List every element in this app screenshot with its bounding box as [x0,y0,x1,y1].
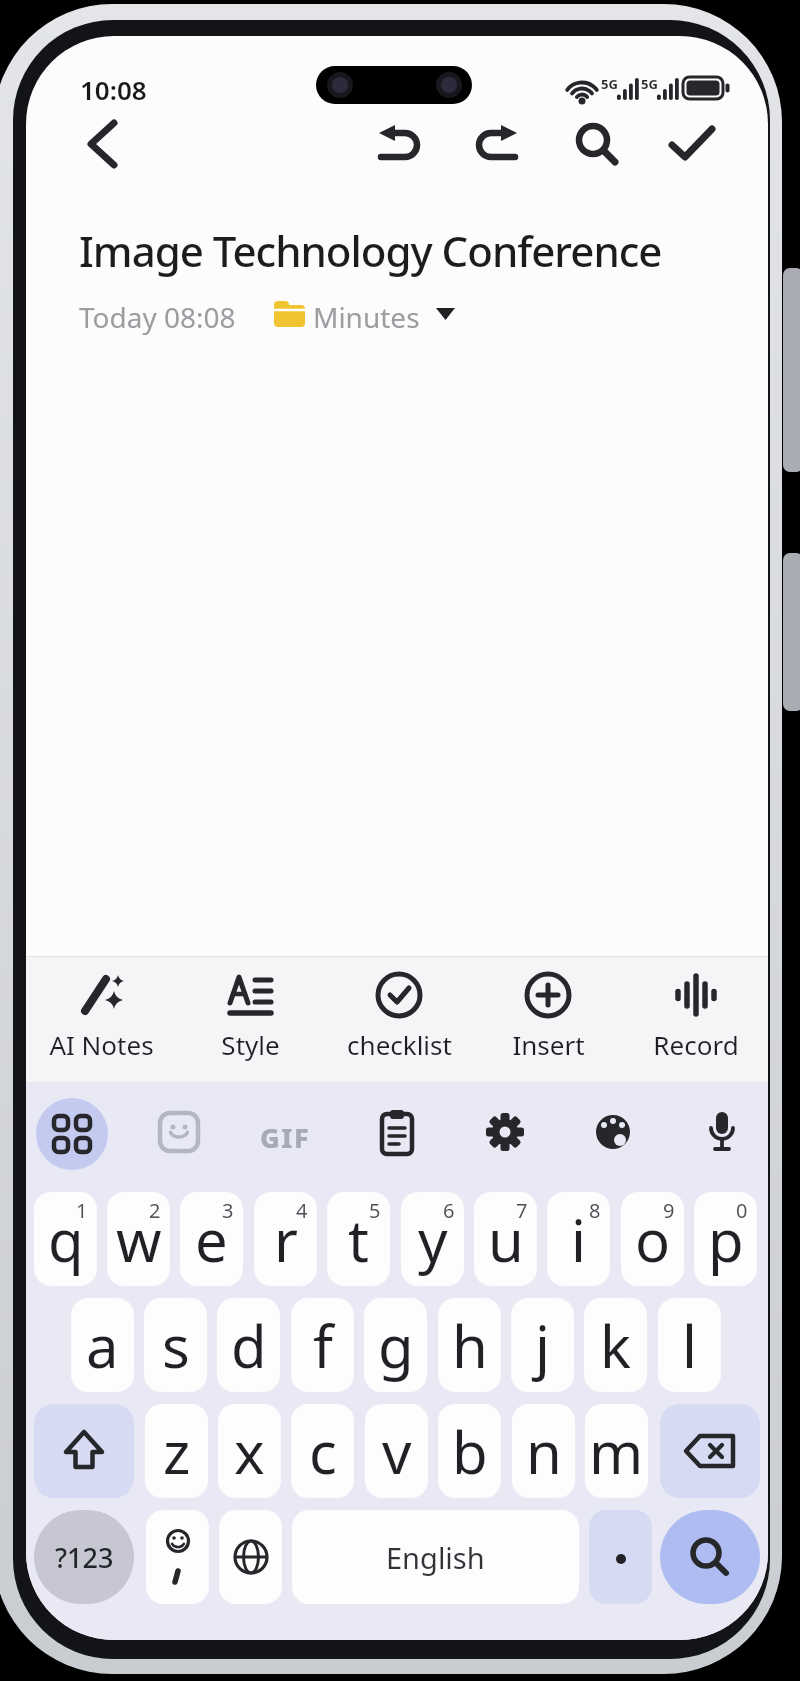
button[interactable]: Record [626,970,766,1074]
button[interactable]: u [474,1192,537,1286]
button[interactable]: AI Notes [31,970,171,1074]
button[interactable]: o [621,1192,684,1286]
button[interactable]: n [512,1404,575,1498]
staticText: 5G [601,75,618,93]
staticText: e [195,1200,228,1279]
button[interactable] [474,124,520,164]
staticText: z [163,1412,191,1491]
button[interactable] [483,1110,531,1158]
staticText: 0 [736,1197,748,1224]
button[interactable]: d [217,1298,280,1392]
staticText: g [378,1306,414,1385]
button[interactable]: Style [180,970,320,1074]
staticText: 2 [149,1197,161,1224]
staticText: 8 [589,1197,601,1224]
button[interactable] [376,124,422,164]
staticText: 1 [76,1197,88,1224]
staticText: v [382,1412,412,1491]
staticText: checklist [347,1027,452,1062]
button[interactable]: c [291,1404,354,1498]
button[interactable]: x [218,1404,281,1498]
button[interactable]: GIF [260,1119,311,1156]
staticText: c [309,1412,337,1491]
staticText: k [600,1306,631,1385]
staticText: Record [653,1027,739,1062]
button[interactable]: b [438,1404,501,1498]
button[interactable] [700,1110,748,1158]
button[interactable]: a [71,1298,134,1392]
staticText: p [708,1200,744,1279]
button[interactable] [668,125,716,163]
button[interactable]: ?123 [34,1510,134,1604]
staticText: m [589,1412,644,1491]
staticText: h [452,1306,488,1385]
staticText: 7 [516,1197,528,1224]
staticText: ?123 [55,1539,114,1576]
staticText: t [348,1200,369,1279]
staticText: 6 [443,1197,455,1224]
button[interactable]: checklist [329,970,469,1074]
button[interactable] [660,1404,760,1498]
staticText: Style [221,1027,280,1062]
button[interactable]: p [694,1192,757,1286]
button[interactable] [36,1098,108,1170]
staticText: x [234,1412,265,1491]
button[interactable]: k [584,1298,647,1392]
staticText: o [635,1200,671,1279]
button[interactable] [82,120,124,168]
button[interactable]: y [401,1192,464,1286]
staticText: a [86,1306,119,1385]
button[interactable]: r [254,1192,317,1286]
button[interactable] [589,1510,652,1604]
button[interactable]: s [144,1298,207,1392]
button[interactable] [375,1110,423,1158]
staticText: 10:08 [80,72,147,107]
button[interactable]: m [585,1404,648,1498]
button[interactable]: l [658,1298,721,1392]
button[interactable]: i [547,1192,610,1286]
button[interactable] [591,1110,639,1158]
button[interactable] [219,1510,282,1604]
button[interactable]: English [292,1510,579,1604]
staticText: u [488,1200,524,1279]
staticText: q [48,1200,84,1279]
staticText: Image Technology Conference [79,222,662,279]
button[interactable] [660,1510,760,1604]
button[interactable]: j [511,1298,574,1392]
button[interactable]: Minutes [313,298,420,336]
staticText: w [116,1200,162,1279]
staticText: i [571,1200,586,1279]
button[interactable] [34,1404,134,1498]
staticText: Minutes [313,298,420,336]
staticText: y [418,1200,448,1279]
staticText: d [231,1306,267,1385]
button[interactable]: z [145,1404,208,1498]
staticText: l [682,1306,697,1385]
button[interactable] [574,121,620,167]
staticText: 9 [663,1197,675,1224]
staticText: b [452,1412,488,1491]
staticText: 4 [296,1197,308,1224]
button[interactable]: g [364,1298,427,1392]
button[interactable]: q [34,1192,97,1286]
button[interactable]: t [327,1192,390,1286]
button[interactable]: h [438,1298,501,1392]
staticText: AI Notes [49,1027,154,1062]
button[interactable]: f [291,1298,354,1392]
staticText: 5 [369,1197,381,1224]
staticText: s [162,1306,190,1385]
button[interactable]: w [107,1192,170,1286]
staticText: n [526,1412,562,1491]
staticText: Insert [512,1027,585,1062]
button[interactable]: e [180,1192,243,1286]
staticText: r [274,1200,298,1279]
button[interactable]: Insert [478,970,618,1074]
button[interactable] [157,1110,205,1158]
staticText: English [386,1538,485,1577]
button[interactable] [146,1510,209,1604]
button[interactable]: v [365,1404,428,1498]
staticText: f [313,1306,333,1385]
staticText: Today 08:08 [79,298,236,336]
staticText: j [535,1306,550,1385]
staticText: 5G [641,75,658,93]
